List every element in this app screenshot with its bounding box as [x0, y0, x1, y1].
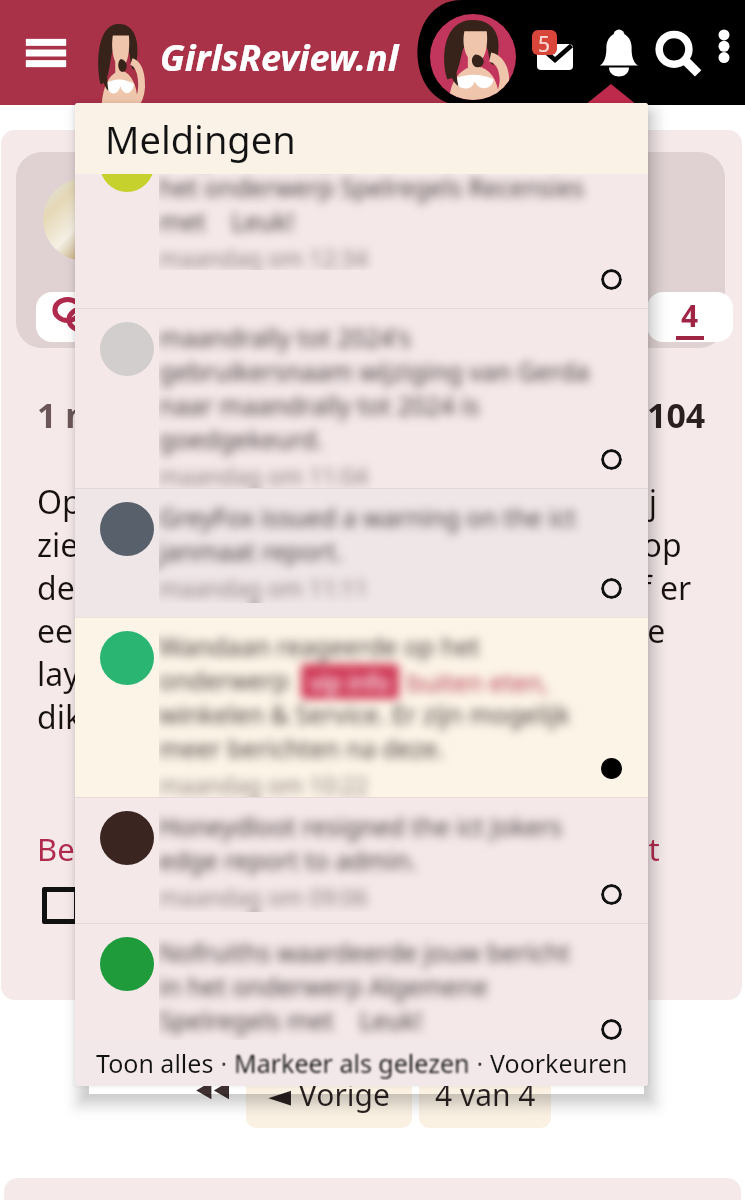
- staticText: maandag om 11:04: [159, 460, 368, 491]
- staticText: #104: [625, 392, 706, 438]
- staticText: Honeydloot resigned the ict Jokers edge …: [159, 809, 562, 877]
- button[interactable]: reageerde op jouw bericht in het onderwe…: [75, 174, 648, 308]
- button[interactable]: Voorkeuren: [490, 1046, 628, 1080]
- button[interactable]: 4: [647, 292, 733, 342]
- staticText: ·: [214, 1046, 234, 1080]
- staticText: ·: [470, 1046, 490, 1080]
- staticText: 4 van 4: [435, 1074, 536, 1115]
- staticText: maandag om 10:22: [159, 769, 368, 800]
- button[interactable]: Nofruiths waardeerde jouw bericht in het…: [75, 923, 648, 1040]
- staticText: 5: [538, 30, 551, 55]
- button[interactable]: Bekijk hier het voorbeeld van zo'n momen…: [37, 828, 660, 870]
- staticText: Wandaan reageerde op het onderwerp winke…: [159, 629, 570, 765]
- button[interactable]: Toon alles: [96, 1046, 214, 1080]
- staticText: Meldingen: [105, 113, 296, 165]
- staticText: GirlsReview.nl: [160, 33, 399, 82]
- button[interactable]: 4 van 4: [419, 1060, 551, 1128]
- button[interactable]: GreyFox issued a warning on the ict janm…: [75, 488, 648, 617]
- button[interactable]: ◄ Vorige: [246, 1060, 412, 1128]
- staticText: 1 maand geleden: [37, 392, 328, 438]
- button[interactable]: Menu: [18, 25, 74, 81]
- button[interactable]: Selecteer: [42, 887, 79, 924]
- button[interactable]: Berichten: [524, 24, 580, 80]
- staticText: maandag om 11:11: [159, 572, 368, 603]
- button[interactable]: Zoeken: [648, 22, 710, 84]
- staticText: maandag om 12:34: [159, 242, 368, 270]
- staticText: ◄ Vorige: [268, 1074, 390, 1115]
- button[interactable]: Markeer als gelezen: [234, 1046, 470, 1080]
- button[interactable]: Eerste pagina: [193, 1072, 233, 1112]
- button[interactable]: maandrally tot 2024's gebruikersnaam wij…: [75, 308, 648, 488]
- staticText: GreyFox issued a warning on the ict janm…: [159, 500, 576, 568]
- staticText: buiten eten,: [407, 665, 549, 699]
- staticText: 4: [681, 295, 699, 336]
- button[interactable]: Wandaan reageerde op het onderwerp winke…: [75, 617, 648, 797]
- staticText: Nofruiths waardeerde jouw bericht in het…: [159, 935, 570, 1037]
- button[interactable]: Profiel: [430, 14, 516, 100]
- staticText: vip info: [310, 666, 390, 697]
- staticText: Op de vernieuwde site is mij wel iets op…: [37, 480, 692, 738]
- staticText: maandag om 09:06: [159, 881, 368, 912]
- button[interactable]: Honeydloot resigned the ict Jokers edge …: [75, 797, 648, 923]
- button[interactable]: Meer opties: [700, 22, 745, 70]
- staticText: reageerde op jouw bericht in het onderwe…: [159, 174, 585, 238]
- button[interactable]: Meldingen: [588, 24, 650, 86]
- button[interactable]: Reageer: [36, 292, 156, 342]
- staticText: maandrally tot 2024's gebruikersnaam wij…: [159, 320, 590, 456]
